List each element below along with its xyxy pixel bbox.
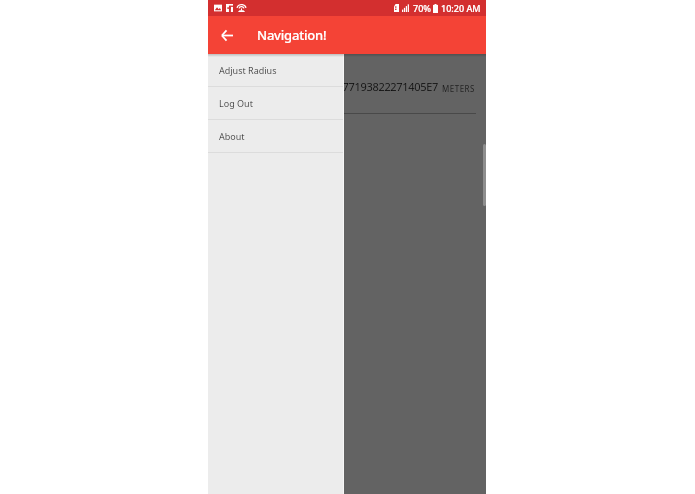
button[interactable]: Back xyxy=(215,23,239,47)
button[interactable]: About xyxy=(208,120,343,153)
staticText: 1.277193822271405E7 xyxy=(328,79,438,94)
staticText: Adjust Radius xyxy=(219,64,277,76)
staticText: Log Out xyxy=(219,97,253,109)
staticText: 10:20 AM xyxy=(441,2,481,14)
button[interactable]: Log Out xyxy=(208,87,343,120)
staticText: 70% xyxy=(413,2,431,14)
staticText: About xyxy=(219,130,245,142)
staticText: Navigation! xyxy=(257,26,327,44)
button[interactable]: Adjust Radius xyxy=(208,54,343,87)
staticText: METERS xyxy=(442,83,475,94)
